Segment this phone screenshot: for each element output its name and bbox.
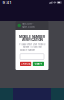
staticText: 9:41 (2, 0, 11, 5)
staticText: number to continue (22, 45, 41, 48)
staticText: secure-site.com (22, 22, 34, 29)
staticText: MOBILE NUMBER (19, 35, 45, 39)
staticText: VERIFICATION (21, 38, 42, 42)
staticText: Mobile number (20, 49, 35, 51)
staticText: CANCEL (21, 62, 31, 65)
button[interactable]: VERIFY (33, 62, 44, 66)
staticText: Please enter your mobile (19, 43, 45, 46)
button[interactable]: CANCEL (20, 62, 31, 66)
staticText: VERIFY (34, 62, 42, 65)
